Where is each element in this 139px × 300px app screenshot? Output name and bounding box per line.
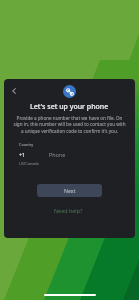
staticText: Country	[19, 142, 34, 147]
staticText: +1	[19, 151, 26, 158]
button[interactable]: Back	[6, 83, 22, 99]
staticText: Next	[64, 187, 76, 194]
button[interactable]: Next	[37, 184, 102, 197]
staticText: Need help?	[54, 207, 83, 214]
button[interactable]: Need help?	[54, 207, 83, 214]
staticText: US/Canada	[19, 161, 39, 166]
staticText: Provide a phone number that we have on f…	[12, 115, 127, 135]
staticText: Phone	[49, 151, 66, 158]
staticText: Let's set up your phone	[30, 102, 109, 112]
